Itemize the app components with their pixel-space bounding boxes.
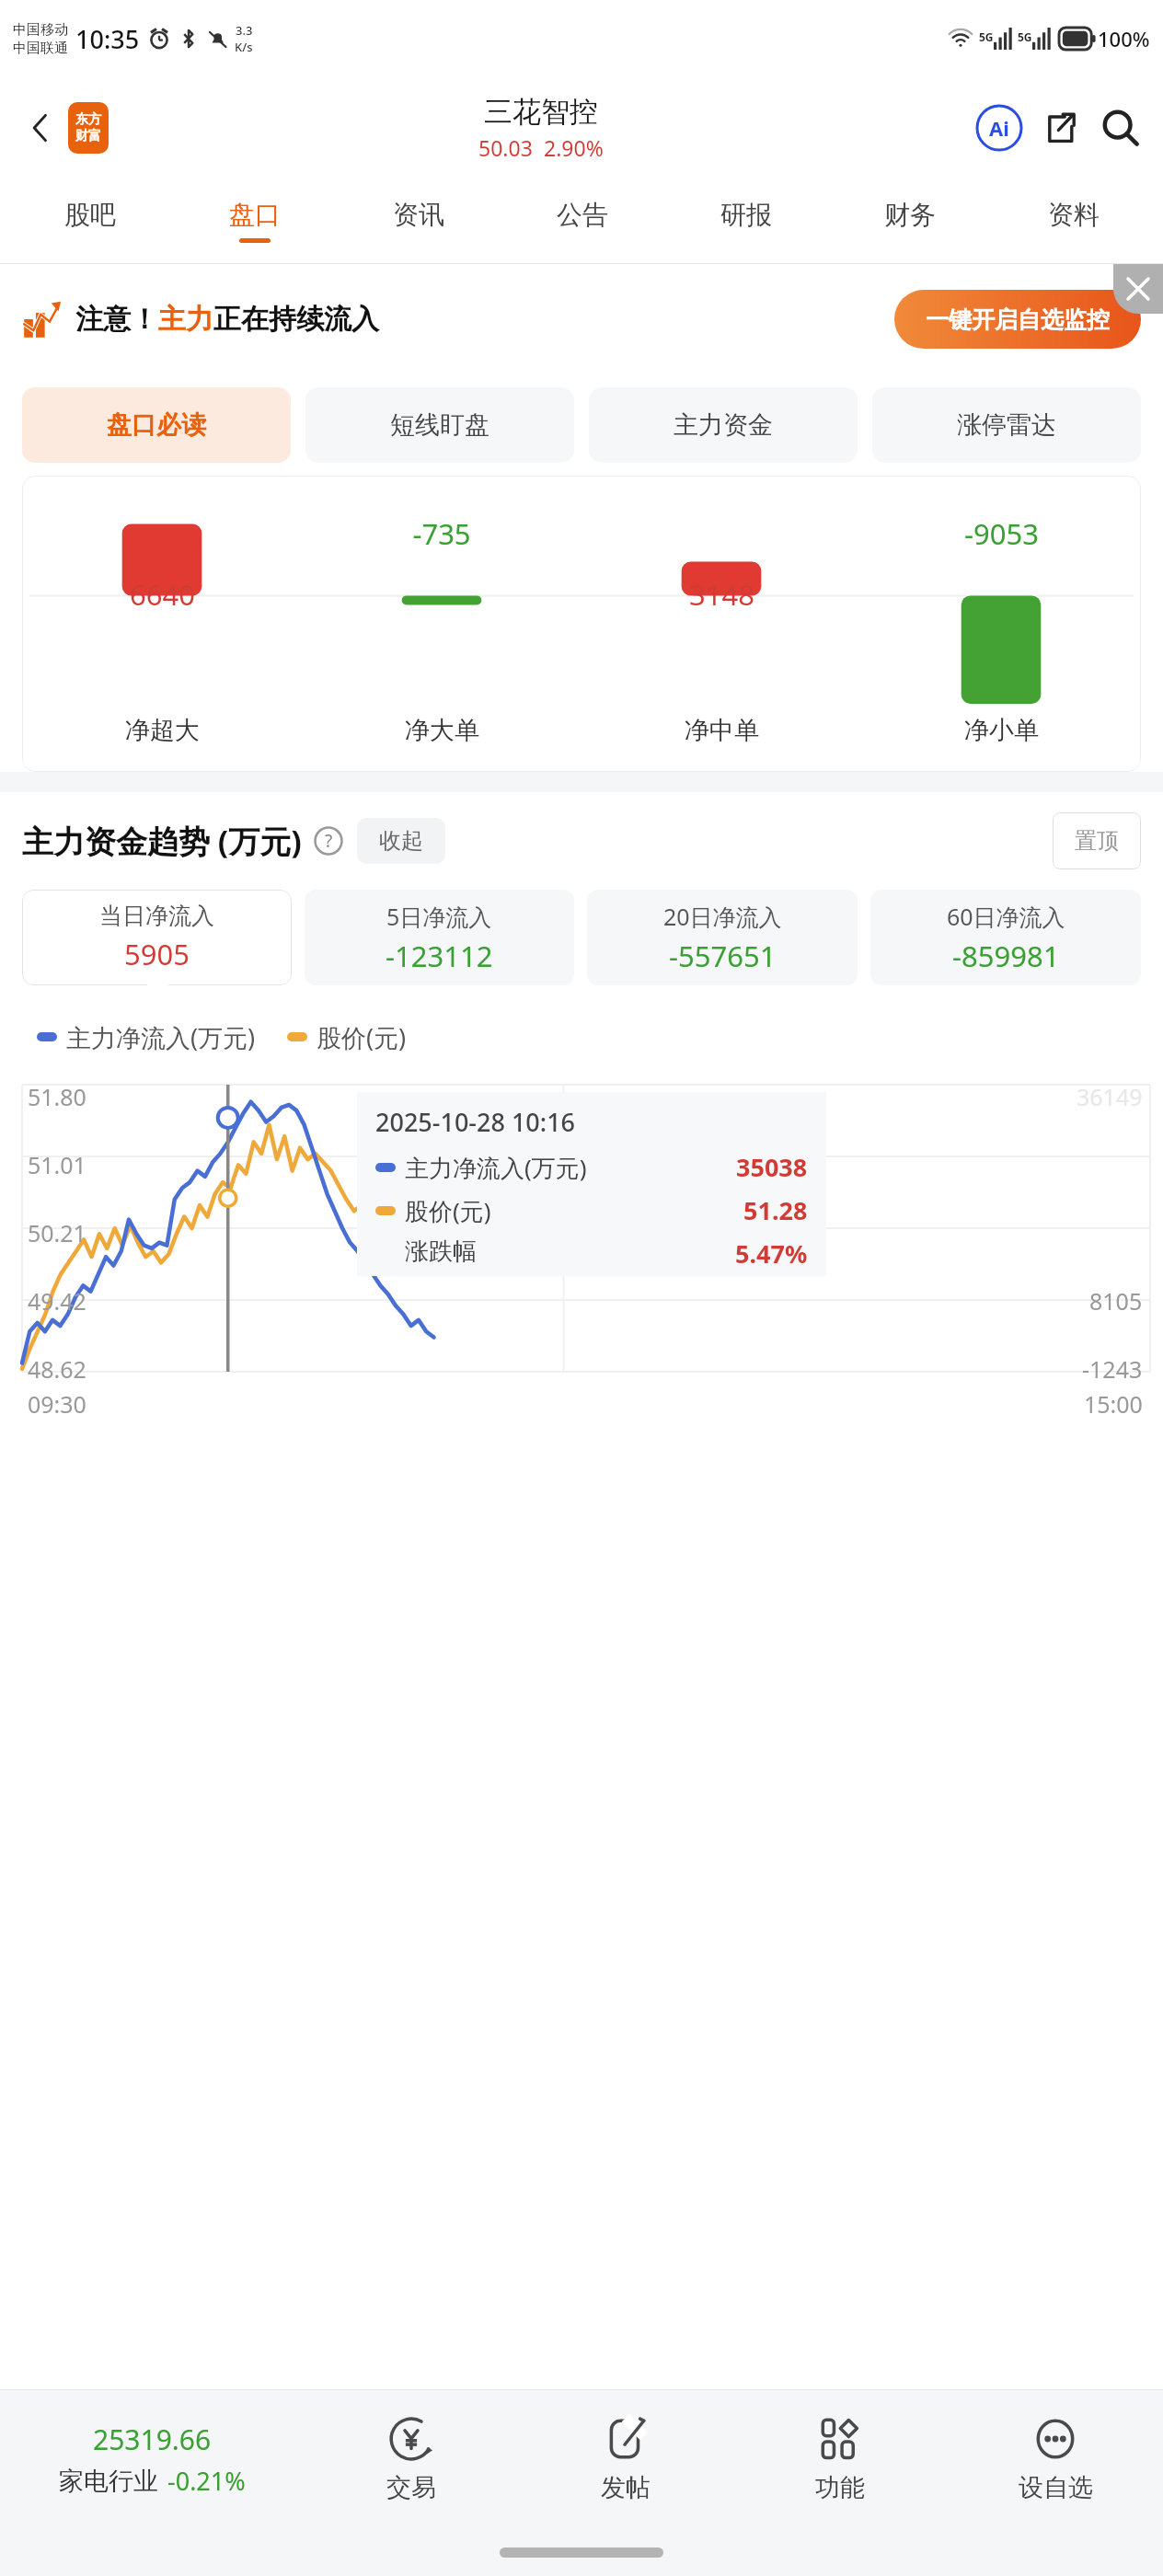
staticText: 3148 bbox=[689, 575, 754, 614]
button[interactable]: 收起 bbox=[357, 818, 445, 864]
staticText: ? bbox=[325, 829, 333, 853]
staticText: 5G bbox=[1018, 29, 1032, 44]
staticText: 10:35 bbox=[75, 22, 140, 56]
button[interactable]: 当日净流入 bbox=[22, 890, 292, 985]
button[interactable]: 6640 bbox=[22, 476, 1141, 772]
staticText: -859981 bbox=[952, 937, 1060, 975]
staticText: 51.01 bbox=[28, 1149, 86, 1180]
staticText: 正在持续流入 bbox=[213, 302, 379, 337]
button[interactable]: 交易 bbox=[304, 2390, 518, 2528]
button[interactable]: Help bbox=[313, 825, 344, 857]
staticText: 51.28 bbox=[743, 1193, 808, 1227]
staticText: 49.42 bbox=[28, 1285, 86, 1317]
staticText: 东方 bbox=[75, 111, 101, 128]
staticText: 短线盯盘 bbox=[390, 409, 489, 441]
staticText: 51.80 bbox=[28, 1081, 86, 1112]
button[interactable]: Share bbox=[1034, 102, 1086, 154]
button[interactable]: 主力资金 bbox=[589, 387, 858, 463]
button[interactable]: 财务 bbox=[828, 178, 992, 263]
staticText: 50.21 bbox=[28, 1217, 86, 1248]
staticText: Ai bbox=[989, 114, 1009, 142]
staticText: 6640 bbox=[130, 575, 195, 614]
staticText: 5.47% bbox=[735, 1236, 808, 1263]
staticText: -557651 bbox=[669, 937, 777, 975]
staticText: 主力净流入(万元) bbox=[66, 1020, 256, 1054]
staticText: 35038 bbox=[736, 1150, 808, 1184]
staticText: 净中单 bbox=[685, 715, 759, 746]
staticText: 家电行业 bbox=[59, 2466, 158, 2497]
staticText: 研报 bbox=[720, 199, 772, 231]
staticText: 发帖 bbox=[601, 2472, 651, 2503]
staticText: 置顶 bbox=[1075, 827, 1119, 855]
button[interactable]: 盘口必读 bbox=[22, 387, 291, 463]
button[interactable]: East Money bbox=[68, 102, 109, 154]
staticText: 中国联通 bbox=[13, 40, 68, 57]
button[interactable]: 60日净流入 bbox=[870, 890, 1141, 985]
staticText: 注意！ bbox=[75, 302, 158, 337]
staticText: 09:30 bbox=[28, 1388, 86, 1420]
staticText: 公告 bbox=[557, 199, 608, 231]
staticText: 一键开启自选监控 bbox=[926, 305, 1110, 334]
staticText: 净超大 bbox=[125, 715, 200, 746]
staticText: 5日净流入 bbox=[386, 901, 492, 932]
button[interactable]: Back bbox=[17, 104, 64, 152]
staticText: 资讯 bbox=[393, 199, 444, 231]
button[interactable]: 短线盯盘 bbox=[305, 387, 574, 463]
staticText: 涨停雷达 bbox=[957, 409, 1056, 441]
staticText: 60日净流入 bbox=[947, 901, 1065, 932]
staticText: 中国移动 bbox=[13, 21, 68, 39]
staticText: 净小单 bbox=[964, 715, 1039, 746]
button[interactable]: 设自选 bbox=[948, 2390, 1163, 2528]
staticText: 20日净流入 bbox=[663, 901, 782, 932]
button[interactable]: 20日净流入 bbox=[587, 890, 858, 985]
button[interactable]: 盘口 bbox=[172, 178, 337, 263]
staticText: 25319.66 bbox=[93, 2421, 212, 2458]
staticText: -123112 bbox=[386, 937, 493, 975]
button[interactable]: AI assistant bbox=[973, 102, 1025, 154]
staticText: 收起 bbox=[379, 827, 423, 855]
staticText: 48.62 bbox=[28, 1353, 86, 1385]
staticText: 8105 bbox=[1089, 1285, 1143, 1317]
staticText: -1243 bbox=[1082, 1353, 1143, 1385]
staticText: 净大单 bbox=[405, 715, 479, 746]
staticText: 交易 bbox=[386, 2472, 436, 2503]
button[interactable]: 资讯 bbox=[337, 178, 501, 263]
staticText: 股价(元) bbox=[317, 1020, 407, 1054]
staticText: 财富 bbox=[75, 128, 101, 144]
button[interactable]: 发帖 bbox=[518, 2390, 732, 2528]
button[interactable]: 资料 bbox=[992, 178, 1156, 263]
staticText: 5G bbox=[979, 29, 994, 44]
staticText: 主力资金 bbox=[674, 409, 773, 441]
button[interactable]: 25319.66 bbox=[0, 2421, 304, 2498]
staticText: -0.21% bbox=[167, 2464, 246, 2498]
button[interactable]: 5日净流入 bbox=[305, 890, 574, 985]
staticText: 三花智控 bbox=[484, 94, 598, 130]
staticText: 36149 bbox=[1077, 1081, 1143, 1112]
staticText: 3.3 bbox=[236, 22, 253, 39]
staticText: -9053 bbox=[964, 514, 1039, 553]
button[interactable]: 功能 bbox=[732, 2390, 948, 2528]
staticText: 主力净流入(万元) bbox=[405, 1151, 587, 1184]
staticText: 设自选 bbox=[1019, 2472, 1093, 2503]
button[interactable]: Search bbox=[1095, 102, 1146, 154]
staticText: 财务 bbox=[884, 199, 936, 231]
button[interactable]: 涨停雷达 bbox=[872, 387, 1141, 463]
button[interactable]: Close bbox=[1113, 264, 1163, 314]
staticText: 主力 bbox=[158, 302, 213, 337]
staticText: 主力资金趋势 (万元) bbox=[22, 820, 302, 862]
staticText: 功能 bbox=[815, 2472, 865, 2503]
staticText: -735 bbox=[412, 514, 471, 553]
staticText: 15:00 bbox=[1084, 1388, 1143, 1420]
staticText: 盘口必读 bbox=[107, 409, 206, 441]
button[interactable]: 一键开启自选监控 bbox=[894, 290, 1141, 349]
button[interactable]: 研报 bbox=[664, 178, 828, 263]
staticText: 100% bbox=[1098, 25, 1150, 52]
staticText: 资料 bbox=[1048, 199, 1100, 231]
button[interactable]: 置顶 bbox=[1053, 812, 1141, 869]
button[interactable]: 股吧 bbox=[7, 178, 172, 263]
button[interactable]: 公告 bbox=[501, 178, 664, 263]
staticText: K/s bbox=[235, 39, 253, 55]
staticText: 当日净流入 bbox=[99, 902, 214, 930]
staticText: 涨跌幅 bbox=[405, 1236, 477, 1263]
staticText: 2025-10-28 10:16 bbox=[375, 1105, 576, 1139]
